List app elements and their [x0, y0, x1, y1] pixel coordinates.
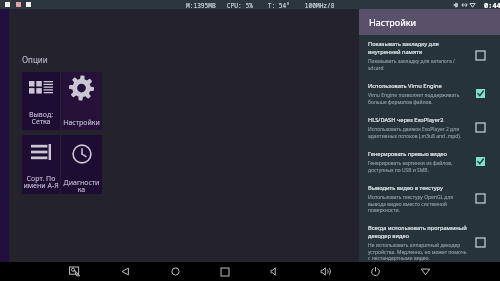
staticText: Диагностика — [62, 178, 101, 194]
button[interactable]: Выводить видео в текстуру — [359, 179, 500, 219]
staticText: Использовать движок ExoPlayer 2 для адап… — [368, 126, 469, 139]
button[interactable]: Toggle — [476, 123, 485, 132]
button[interactable]: Использовать Vimu Engine — [359, 77, 500, 111]
button[interactable]: Показывать закладку для внутренней памят… — [359, 35, 500, 77]
staticText: Показывать закладку для внутренней памят… — [368, 40, 469, 56]
button[interactable]: Hide navigation bar — [412, 262, 438, 281]
button[interactable]: Сорт. По имени А-Я — [22, 135, 60, 194]
button[interactable]: Toggle — [476, 157, 485, 166]
button[interactable]: Back — [112, 262, 138, 281]
staticText: M:1395MB CPU: 5% T: 54° 100MHz/8 — [186, 1, 335, 9]
button[interactable]: Всегда использовать программный декодер … — [359, 219, 500, 267]
button[interactable]: Toggle — [476, 194, 485, 203]
staticText: Vimu Engine позволяет поддерживать больш… — [368, 92, 469, 105]
button[interactable]: HLS/DASH через ExoPlayer2 — [359, 111, 500, 145]
staticText: Показывать закладку для каталога / sdcar… — [368, 58, 469, 71]
staticText: Генерировать превью видео — [368, 150, 447, 158]
staticText: HLS/DASH через ExoPlayer2 — [368, 116, 444, 124]
staticText: Опции — [22, 54, 48, 65]
button[interactable]: Toggle — [476, 51, 485, 60]
staticText: Генерировать картинки из файлов, доступн… — [368, 160, 469, 173]
button[interactable]: Генерировать превью видео — [359, 145, 500, 179]
button[interactable]: Volume up — [312, 262, 338, 281]
button[interactable]: Home — [162, 262, 188, 281]
button[interactable]: Power — [362, 262, 388, 281]
button[interactable]: Screenshot — [62, 262, 88, 281]
staticText: Всегда использовать программный декодер … — [368, 224, 469, 240]
button[interactable]: Toggle — [476, 238, 485, 247]
staticText: Вывод: Сетка — [23, 110, 59, 127]
staticText: Не использовать аппаратный декодер устро… — [368, 242, 469, 261]
button[interactable]: Toggle — [476, 89, 485, 98]
button[interactable]: Вывод: Сетка — [22, 72, 60, 130]
staticText: Сорт. По имени А-Я — [23, 174, 59, 191]
staticText: Использовать Vimu Engine — [368, 82, 442, 90]
staticText: Использовать текстуру OpenGL для вывода … — [368, 194, 469, 213]
staticText: 0:44 — [484, 1, 500, 10]
button[interactable]: Диагностика — [61, 135, 102, 194]
button[interactable]: Recent apps — [212, 262, 238, 281]
staticText: Выводить видео в текстуру — [368, 184, 443, 192]
button[interactable]: Настройки — [61, 72, 102, 130]
staticText: Настройки — [63, 118, 100, 128]
button[interactable]: Volume down — [262, 262, 288, 281]
staticText: Настройки — [369, 16, 417, 28]
